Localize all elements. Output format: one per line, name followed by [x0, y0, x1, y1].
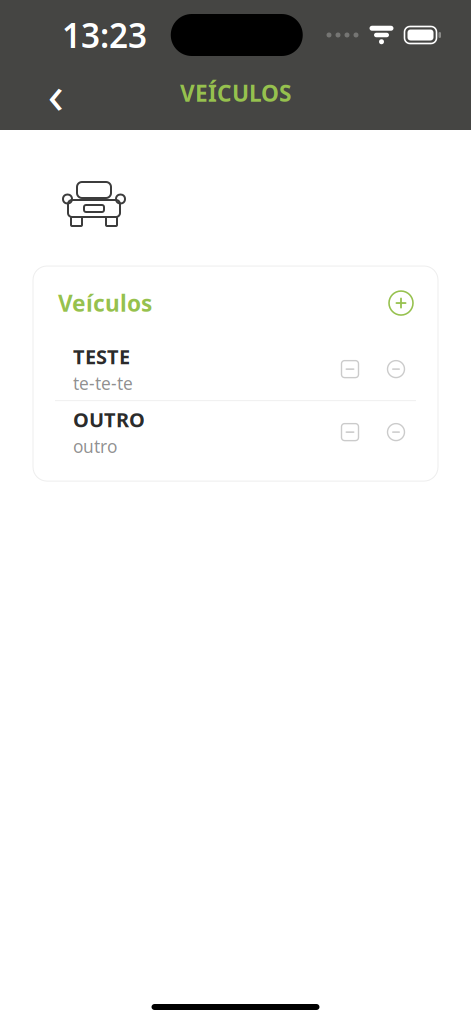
button[interactable]: Add vehicle — [386, 288, 416, 318]
button[interactable]: Edit OUTRO — [338, 420, 362, 444]
staticText: TESTE — [73, 343, 130, 370]
button[interactable]: Back — [30, 70, 82, 116]
staticText: VEÍCULOS — [180, 78, 291, 108]
button[interactable]: Remove OUTRO — [384, 420, 408, 444]
button[interactable]: Edit TESTE — [338, 357, 362, 381]
staticText: 13:23 — [62, 13, 147, 57]
staticText: Veículos — [58, 288, 152, 318]
staticText: outro — [73, 435, 117, 458]
button[interactable]: Remove TESTE — [384, 357, 408, 381]
staticText: ‹ — [47, 58, 64, 128]
staticText: te-te-te — [73, 372, 133, 395]
staticText: OUTRO — [73, 406, 145, 433]
